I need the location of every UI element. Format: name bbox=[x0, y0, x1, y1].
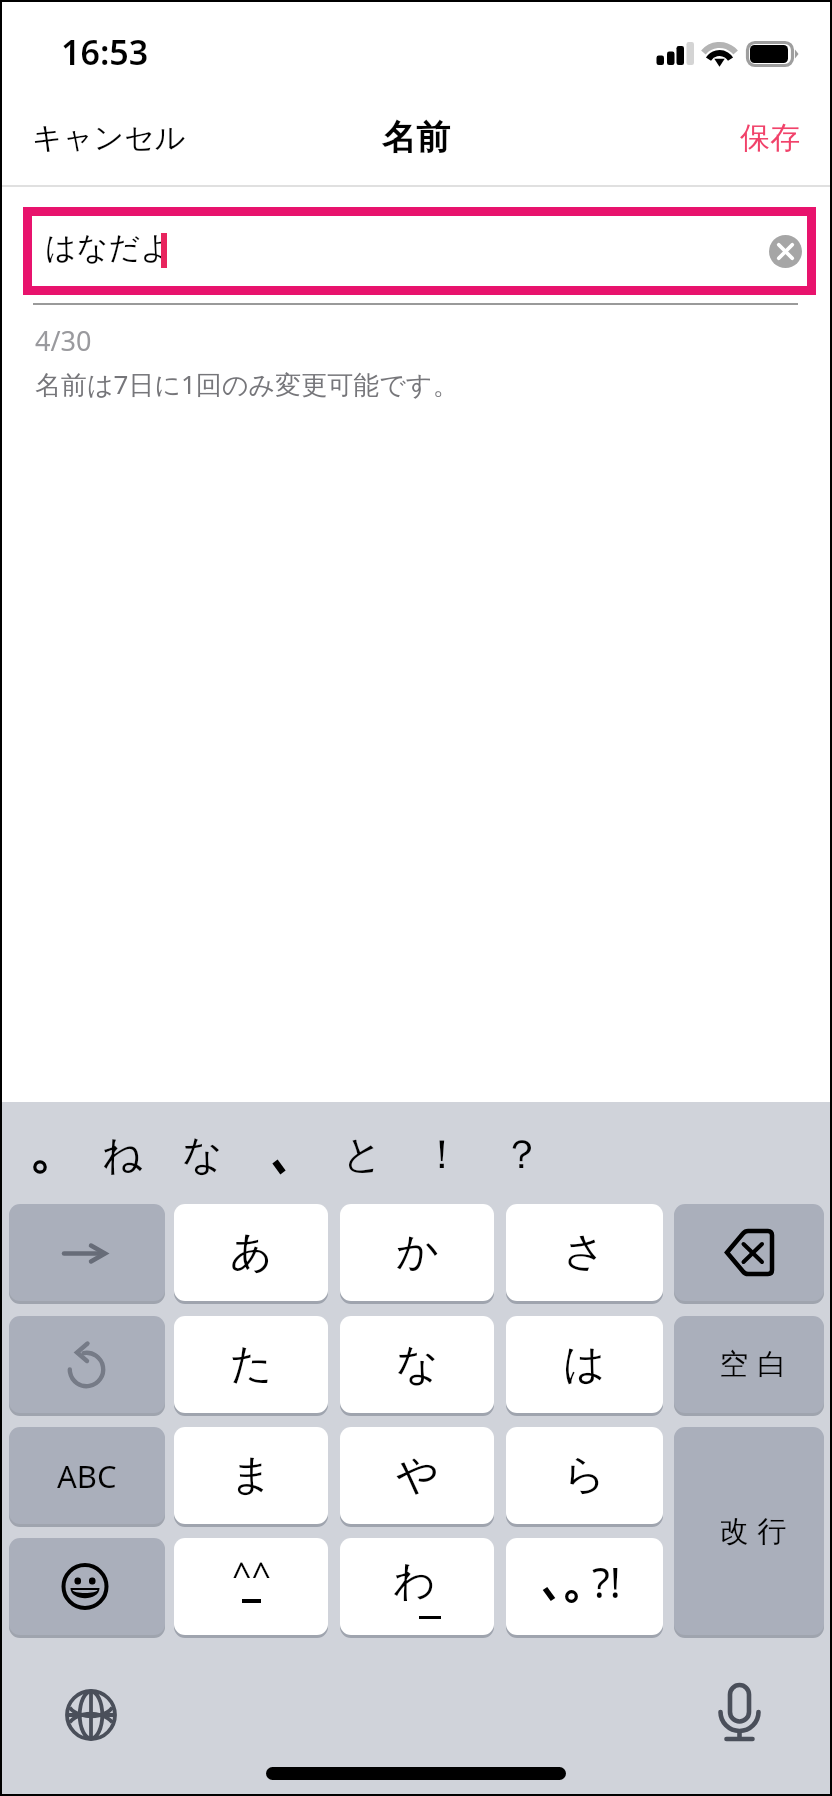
staticText: 16:53 bbox=[61, 29, 149, 75]
staticText: キャンセル bbox=[32, 119, 186, 157]
button[interactable]: Clear text bbox=[769, 235, 802, 268]
button[interactable]: はなだよ bbox=[32, 216, 807, 286]
button[interactable]: ね bbox=[82, 1114, 162, 1194]
button[interactable]: ま bbox=[174, 1427, 328, 1527]
button[interactable]: や bbox=[340, 1427, 494, 1527]
button[interactable]: さ bbox=[506, 1204, 663, 1304]
staticText: や bbox=[396, 1449, 439, 1502]
button[interactable]: ?! bbox=[506, 1538, 663, 1638]
staticText: あ bbox=[230, 1226, 273, 1279]
button[interactable]: Emoji bbox=[9, 1538, 165, 1638]
staticText: と bbox=[342, 1129, 383, 1179]
staticText: ?! bbox=[592, 1554, 621, 1610]
button[interactable]: と bbox=[322, 1114, 402, 1194]
button[interactable]: Next bbox=[9, 1204, 165, 1304]
staticText: ま bbox=[230, 1449, 273, 1502]
button[interactable]: あ bbox=[174, 1204, 328, 1304]
staticText: な bbox=[182, 1129, 223, 1179]
button[interactable] bbox=[242, 1114, 322, 1194]
staticText: さ bbox=[563, 1226, 606, 1279]
button[interactable]: た bbox=[174, 1316, 328, 1416]
staticText: はなだよ bbox=[45, 228, 172, 267]
staticText: ね bbox=[102, 1129, 143, 1179]
button[interactable]: な bbox=[340, 1316, 494, 1416]
button[interactable]: か bbox=[340, 1204, 494, 1304]
button[interactable]: ？ bbox=[482, 1114, 562, 1194]
staticText: た bbox=[230, 1338, 273, 1391]
button[interactable]: ABC bbox=[9, 1427, 165, 1527]
staticText: ^^ bbox=[232, 1551, 271, 1597]
staticText: ？ bbox=[502, 1129, 542, 1179]
staticText: 保存 bbox=[740, 119, 800, 157]
button[interactable]: ら bbox=[506, 1427, 663, 1527]
button[interactable]: キャンセル bbox=[2, 105, 210, 171]
button[interactable]: 改行 bbox=[674, 1427, 824, 1638]
staticText: 名前 bbox=[382, 116, 450, 159]
button[interactable]: 空白 bbox=[674, 1316, 824, 1416]
button[interactable]: 保存 bbox=[716, 105, 830, 171]
staticText: な bbox=[396, 1338, 439, 1391]
staticText: わ bbox=[393, 1555, 436, 1608]
staticText: ら bbox=[563, 1449, 606, 1502]
button[interactable]: わ bbox=[340, 1538, 494, 1638]
staticText: か bbox=[396, 1226, 439, 1279]
button[interactable]: Dictate bbox=[710, 1681, 769, 1743]
staticText: ABC bbox=[57, 1455, 117, 1497]
button[interactable]: Change keyboard bbox=[63, 1687, 119, 1743]
staticText: 名前は7日に1回のみ変更可能です。 bbox=[35, 366, 459, 402]
staticText: 空白 bbox=[715, 1346, 791, 1383]
button[interactable]: な bbox=[162, 1114, 242, 1194]
staticText: は bbox=[563, 1338, 606, 1391]
button[interactable]: Delete bbox=[674, 1204, 824, 1304]
button[interactable]: Undo bbox=[9, 1316, 165, 1416]
button[interactable] bbox=[2, 1114, 82, 1194]
staticText: 4/30 bbox=[35, 322, 92, 359]
button[interactable]: ^^ bbox=[174, 1538, 328, 1638]
button[interactable]: は bbox=[506, 1316, 663, 1416]
staticText: 改行 bbox=[715, 1513, 791, 1550]
button[interactable]: ！ bbox=[402, 1114, 482, 1194]
staticText: ！ bbox=[422, 1129, 462, 1179]
